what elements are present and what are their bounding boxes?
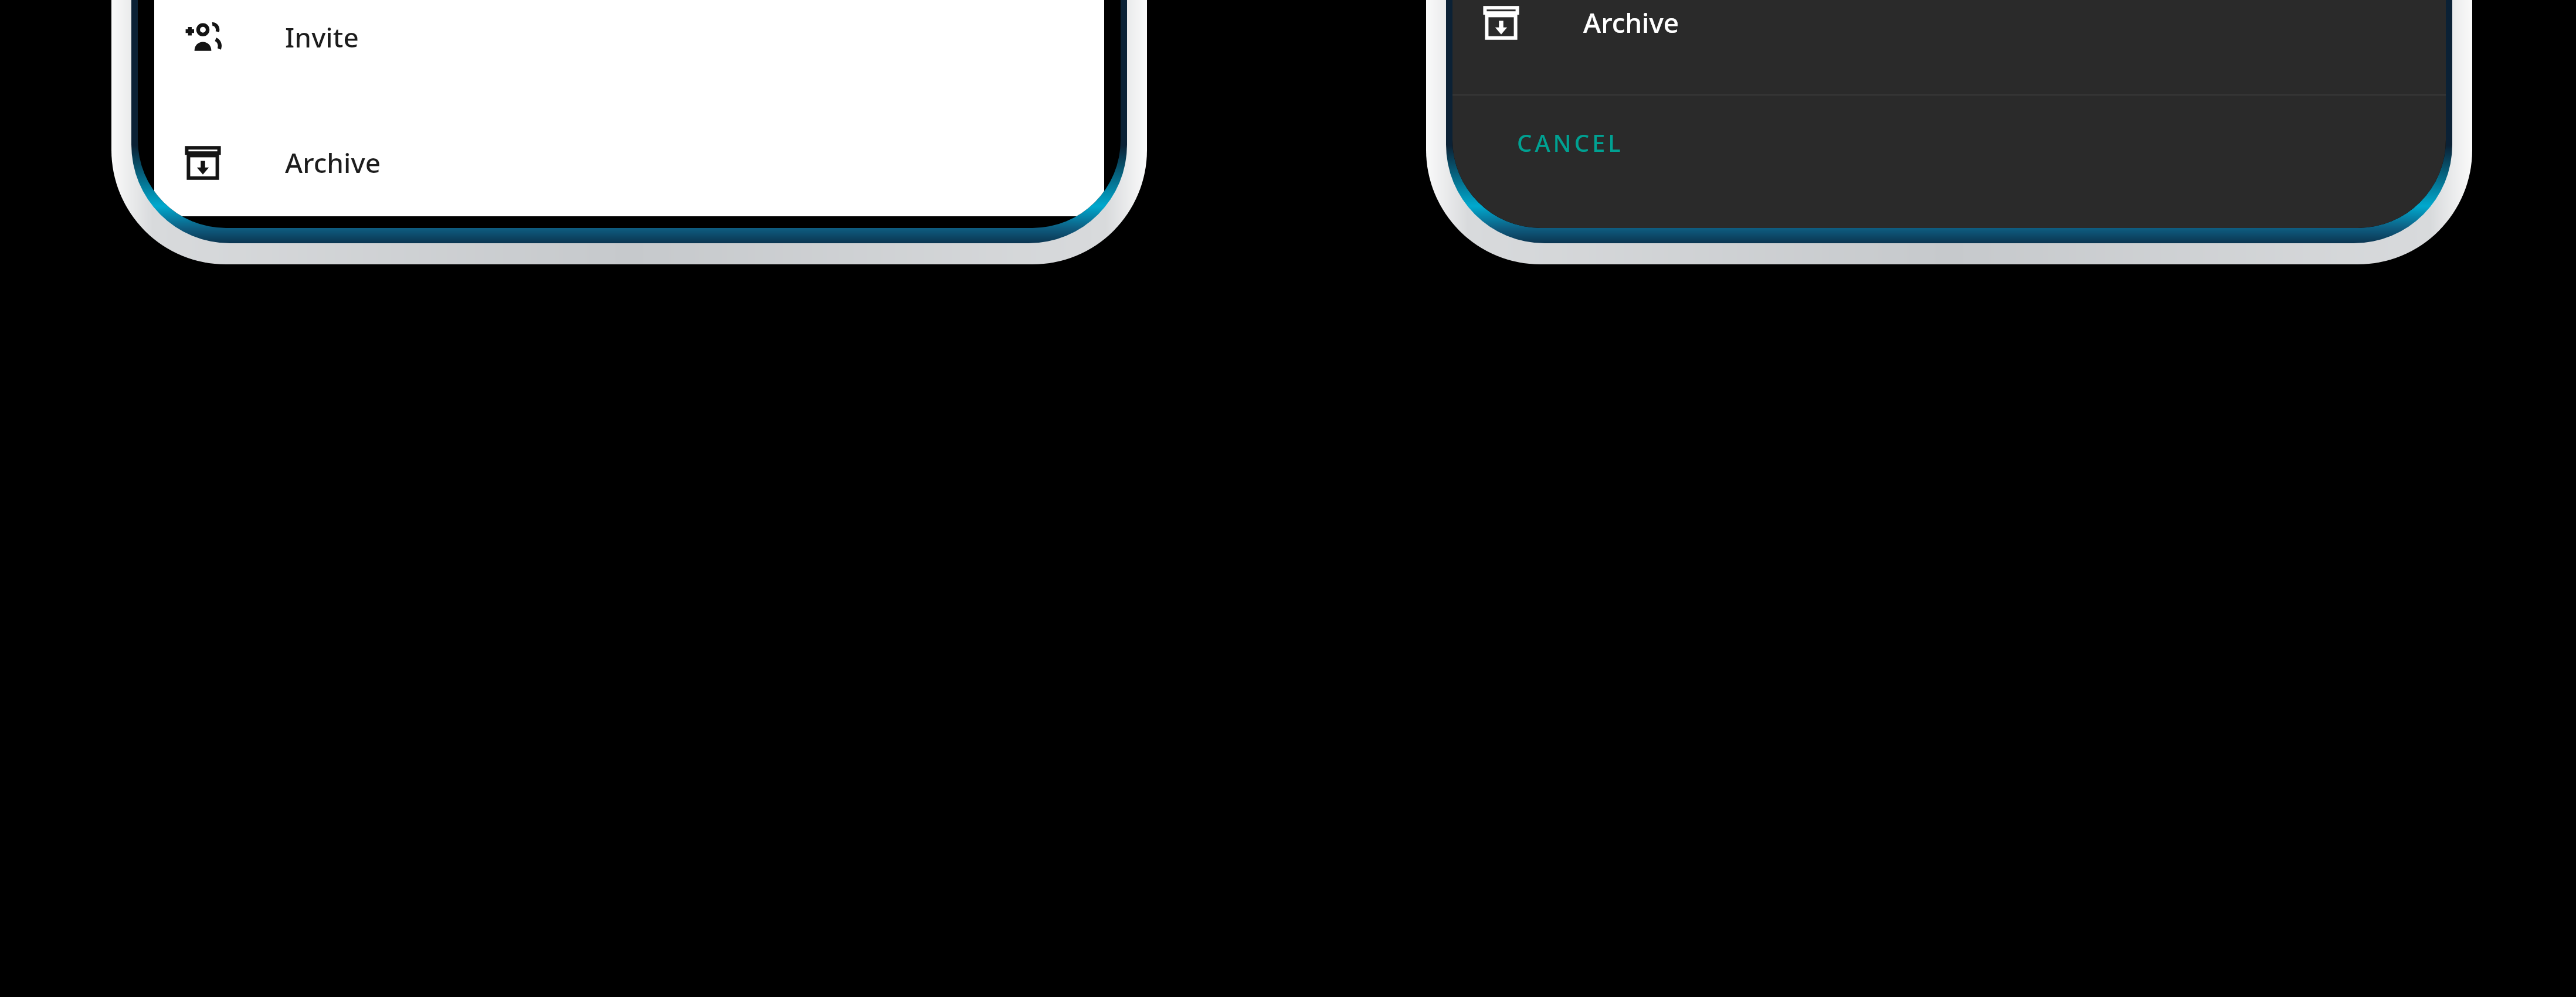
staticText: Archive [285, 144, 381, 181]
staticText: Archive [1583, 4, 1679, 41]
staticText: CANCEL [1517, 127, 1624, 158]
staticText: Invite [285, 19, 359, 56]
button[interactable]: Invite [154, 0, 1104, 109]
button[interactable]: Archive [1452, 0, 2446, 94]
button[interactable]: Archive [154, 109, 1104, 216]
button[interactable]: CANCEL [1452, 96, 2446, 189]
